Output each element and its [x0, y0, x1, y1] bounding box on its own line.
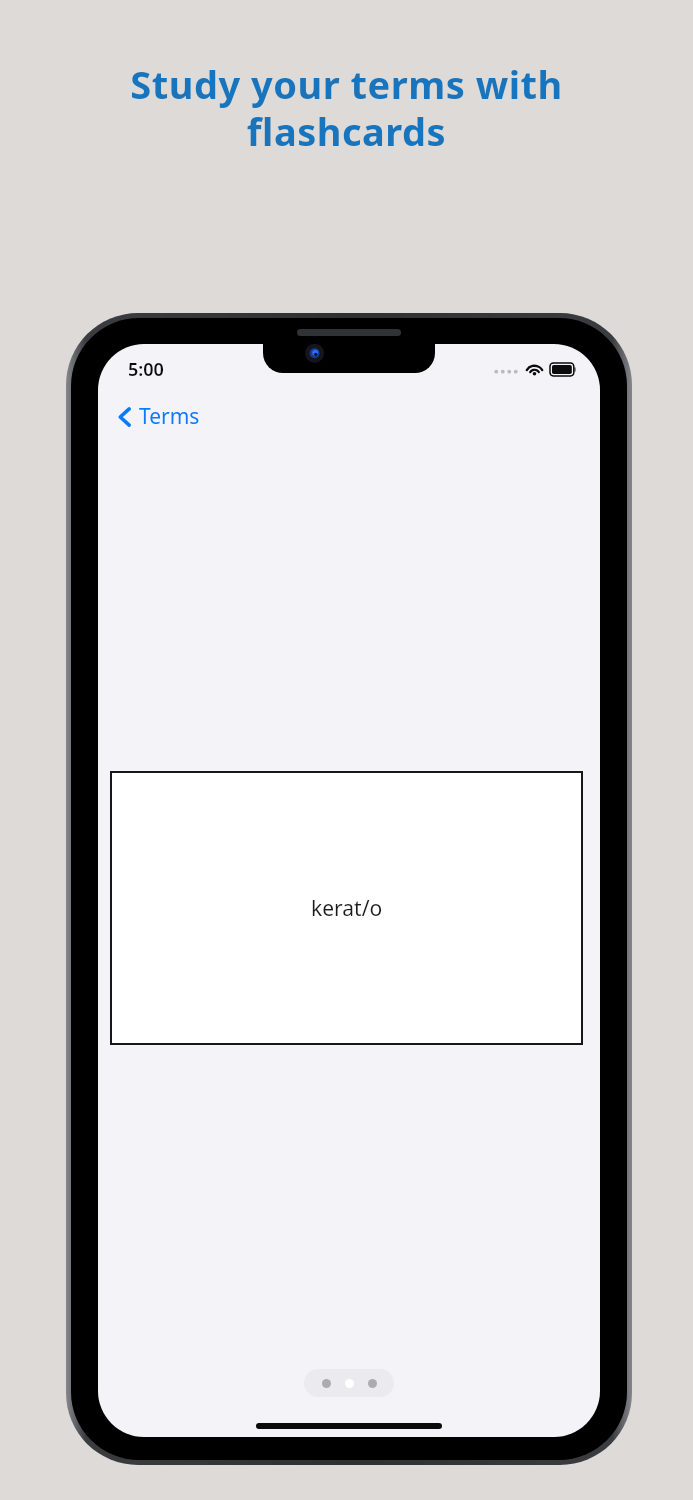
staticText: Study your terms with flashcards: [130, 58, 563, 157]
staticText: kerat/o: [311, 894, 383, 923]
staticText: 5:00: [128, 357, 164, 382]
button[interactable]: kerat/o: [110, 771, 583, 1045]
button[interactable]: Terms: [112, 396, 206, 437]
staticText: Terms: [139, 402, 200, 431]
